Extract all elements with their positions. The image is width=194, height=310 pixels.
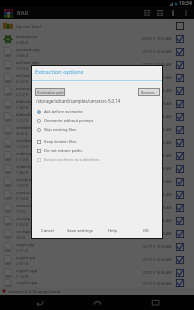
staticText: compress.hpp — [16, 176, 45, 182]
staticText: blake2s.cpp — [16, 98, 40, 104]
staticText: 12/1/13 10:06 AM — [142, 153, 172, 158]
button[interactable]: consio.hpp — [0, 201, 194, 214]
button[interactable]: Back — [24, 295, 54, 310]
staticText: 12/1/13 10:06 AM — [142, 127, 172, 132]
staticText: cmddata.hpp — [16, 137, 43, 143]
button[interactable]: compress.hpp — [0, 175, 194, 188]
button[interactable]: cmddata.cpp — [0, 123, 194, 136]
button[interactable]: Sort — [140, 7, 153, 19]
button[interactable]: More options — [179, 7, 192, 19]
button[interactable]: archive.cpp — [0, 58, 194, 71]
staticText: Cancel — [41, 228, 55, 234]
button[interactable]: consio.cpp — [0, 188, 194, 201]
staticText: 12/1/13 10:06 AM — [142, 114, 172, 119]
staticText: 12/1/13 10:06 AM — [142, 49, 172, 54]
button[interactable]: Do not extract paths — [32, 146, 162, 155]
button[interactable]: Delete — [166, 7, 179, 19]
button[interactable]: Browse... — [138, 88, 160, 96]
staticText: 2 271 B — [16, 248, 29, 253]
staticText: 8 134 B — [16, 196, 29, 201]
staticText: coder.hpp — [16, 163, 36, 169]
staticText: 12/1/13 10:06 AM — [142, 244, 172, 249]
staticText: Ask before overwrite — [44, 109, 83, 114]
button[interactable]: Ask before overwrite — [32, 107, 162, 116]
staticText: Do not extract paths — [44, 148, 83, 153]
button[interactable]: Keep broken files — [32, 137, 162, 146]
button[interactable]: OK — [129, 224, 162, 238]
staticText: Keep broken files — [44, 139, 77, 144]
staticText: coder.cpp — [16, 150, 36, 156]
button[interactable]: crc.hpp — [0, 227, 194, 240]
button[interactable]: Skip existing files — [32, 125, 162, 134]
staticText: 4 606 B — [16, 53, 29, 58]
staticText: Browse... — [141, 90, 158, 95]
staticText: 12/1/13 10:06 AM — [142, 166, 172, 171]
staticText: 5 112 B — [16, 157, 29, 162]
staticText: 12/1/13 10:06 AM — [142, 281, 172, 286]
staticText: RAR — [17, 9, 29, 17]
staticText: consio.hpp — [16, 202, 39, 208]
staticText: 1 212 B — [16, 144, 29, 149]
staticText: Extract archives to subfolders — [44, 157, 100, 162]
staticText: 12/1/13 10:06 AM — [142, 231, 172, 236]
button[interactable]: arcread.cpp — [0, 45, 194, 58]
button[interactable]: View — [153, 7, 166, 19]
staticText: 12/1/13 10:06 AM — [142, 62, 172, 67]
staticText: Save settings — [67, 228, 93, 234]
staticText: 713 B — [16, 209, 26, 214]
button[interactable]: cmddata.hpp — [0, 136, 194, 149]
staticText: 12/1/13 10:06 AM — [142, 192, 172, 197]
staticText: 2 132 B — [16, 274, 29, 279]
staticText: 383 B — [16, 235, 26, 240]
button[interactable]: Cancel — [32, 224, 64, 238]
staticText: 12/1/13 10:06 AM — [142, 88, 172, 93]
staticText: Extraction options — [35, 68, 84, 76]
button[interactable]: Up one level — [0, 19, 194, 32]
button[interactable]: Extract archives to subfolders — [32, 155, 162, 164]
staticText: crypt.hpp — [16, 254, 36, 260]
button[interactable]: crypt2.cpp — [0, 279, 194, 287]
staticText: 12/1/13 10:06 AM — [142, 140, 172, 145]
button[interactable]: arcsea.cpp — [0, 84, 194, 97]
button[interactable]: blake2s.cpp — [0, 97, 194, 110]
button[interactable]: archive.hpp — [0, 71, 194, 84]
staticText: 12/1/13 10:06 AM — [142, 218, 172, 223]
button[interactable]: crypt.hpp — [0, 253, 194, 266]
staticText: Overwrite without prompt — [44, 118, 94, 123]
button[interactable]: Recent apps — [140, 295, 170, 310]
staticText: Help — [108, 228, 118, 234]
button[interactable]: acknow.txt — [0, 32, 194, 45]
button[interactable]: Help — [96, 224, 129, 238]
staticText: 6/30/13 10:05 AM — [142, 36, 172, 41]
button[interactable]: blake2s.hpp — [0, 110, 194, 123]
staticText: 12/1/13 10:06 AM — [142, 257, 172, 262]
staticText: acknow.txt — [16, 33, 38, 39]
staticText: archive.hpp — [16, 72, 40, 78]
staticText: 4 150 B — [16, 79, 29, 84]
staticText: Destination path — [37, 90, 64, 95]
staticText: crypt.cpp — [16, 241, 35, 247]
staticText: crc.hpp — [16, 228, 31, 234]
staticText: 3 434 B — [16, 222, 29, 227]
staticText: archive.cpp — [16, 59, 40, 65]
staticText: consio.cpp — [16, 189, 38, 195]
button[interactable]: Save settings — [64, 224, 96, 238]
staticText: 2 612 B — [16, 92, 29, 97]
staticText: 10:34 — [179, 0, 192, 7]
staticText: Up one level — [16, 23, 41, 29]
button[interactable]: coder.hpp — [0, 162, 194, 175]
staticText: 1 482 B — [16, 170, 29, 175]
staticText: 12/1/13 10:06 AM — [142, 101, 172, 106]
staticText: 12/1/13 10:06 AM — [142, 75, 172, 80]
staticText: OK — [143, 228, 149, 234]
button[interactable]: Overwrite without prompt — [32, 116, 162, 125]
button[interactable]: crypt1.cpp — [0, 266, 194, 279]
staticText: 1 312 B — [16, 118, 29, 123]
staticText: Skip existing files — [44, 127, 77, 132]
button[interactable]: crc.cpp — [0, 214, 194, 227]
button[interactable]: crypt.cpp — [0, 240, 194, 253]
button[interactable]: coder.cpp — [0, 149, 194, 162]
staticText: 7 712 B — [16, 66, 29, 71]
button[interactable]: Home — [82, 295, 112, 310]
